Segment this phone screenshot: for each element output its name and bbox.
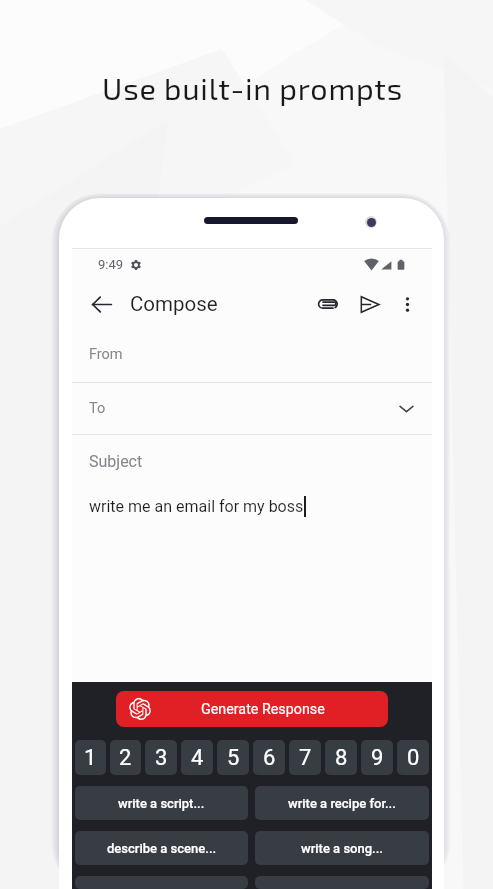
staticText: 5 [227, 745, 240, 771]
staticText: Generate Response [201, 701, 325, 718]
staticText: 6 [263, 745, 276, 771]
staticText: 7 [299, 745, 312, 771]
button[interactable]: 9 [361, 740, 393, 775]
staticText: 0 [407, 745, 420, 771]
button[interactable]: 1 [75, 740, 106, 775]
button[interactable]: 0 [397, 740, 429, 775]
button[interactable]: 7 [289, 740, 321, 775]
button[interactable]: describe a scene... [75, 831, 248, 865]
button[interactable]: Generate Response [116, 691, 388, 727]
button[interactable]: write a recipe for... [255, 786, 429, 820]
button[interactable]: 6 [253, 740, 285, 775]
staticText: 1 [84, 745, 97, 771]
staticText: describe a scene... [107, 841, 217, 856]
staticText: To [89, 400, 106, 417]
button[interactable]: From [72, 326, 432, 382]
staticText: From [89, 346, 123, 363]
staticText: write me an email for my boss [89, 497, 304, 516]
button[interactable]: 5 [217, 740, 249, 775]
staticText: 4 [191, 745, 204, 771]
button[interactable]: 4 [181, 740, 213, 775]
staticText: 9:49 [98, 257, 124, 272]
button[interactable]: Attach file [312, 289, 342, 319]
button[interactable]: Back [88, 291, 114, 317]
button[interactable]: 2 [110, 740, 141, 775]
staticText: 2 [119, 745, 132, 771]
button[interactable]: Send [354, 289, 384, 319]
button[interactable]: write a script... [75, 786, 248, 820]
staticText: Subject [89, 452, 143, 471]
staticText: write a song... [301, 841, 383, 856]
button[interactable]: To [72, 383, 432, 434]
staticText: 8 [335, 745, 348, 771]
staticText: write a script... [118, 796, 205, 811]
staticText: Use built-in prompts [6, 70, 493, 107]
staticText: 9 [371, 745, 384, 771]
button[interactable]: More options [392, 289, 422, 319]
staticText: Compose [130, 292, 218, 316]
button[interactable]: Subject [72, 435, 432, 487]
staticText: write a recipe for... [288, 796, 396, 811]
staticText: 3 [155, 745, 168, 771]
button[interactable]: 3 [145, 740, 177, 775]
button[interactable]: write a song... [255, 831, 429, 865]
button[interactable]: 8 [325, 740, 357, 775]
